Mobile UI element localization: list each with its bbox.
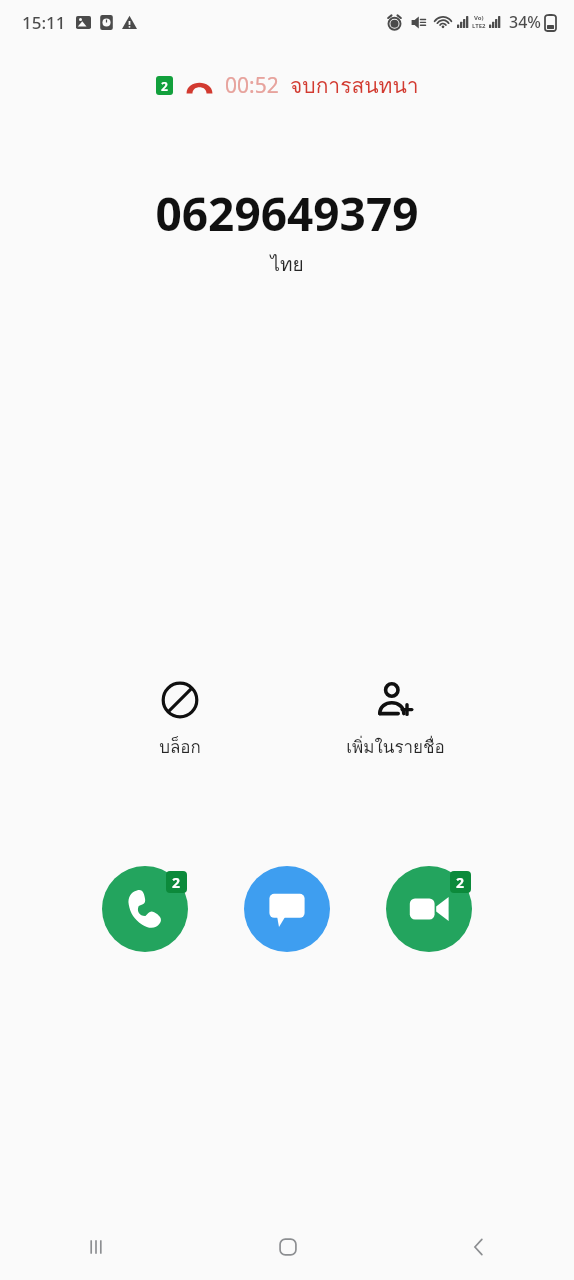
button[interactable]: Home <box>192 1214 383 1280</box>
other: Block <box>160 680 200 720</box>
staticText: เพิ่มในรายชื่อ <box>346 733 445 760</box>
button[interactable]: Message <box>244 866 330 952</box>
staticText: 2 <box>172 873 181 892</box>
staticText: Vo) <box>474 14 484 22</box>
button[interactable]: Video call <box>386 866 472 952</box>
other: Add to contacts <box>375 680 415 720</box>
staticText: 15:11 <box>22 11 66 34</box>
staticText: บล็อก <box>159 733 201 760</box>
staticText: 34% <box>509 11 541 33</box>
staticText: 2 <box>161 78 168 94</box>
button[interactable]: Add to contacts <box>330 676 460 764</box>
button[interactable]: Back <box>383 1214 574 1280</box>
staticText: 00:52 <box>225 71 279 100</box>
button[interactable]: Recents <box>0 1214 192 1280</box>
staticText: 2 <box>456 873 465 892</box>
button[interactable]: Block <box>130 676 230 764</box>
staticText: ไทย <box>270 249 304 279</box>
staticText: LTE2 <box>472 22 486 30</box>
button[interactable]: Call <box>102 866 188 952</box>
staticText: 0629649379 <box>155 182 419 245</box>
staticText: จบการสนทนา <box>290 69 419 102</box>
